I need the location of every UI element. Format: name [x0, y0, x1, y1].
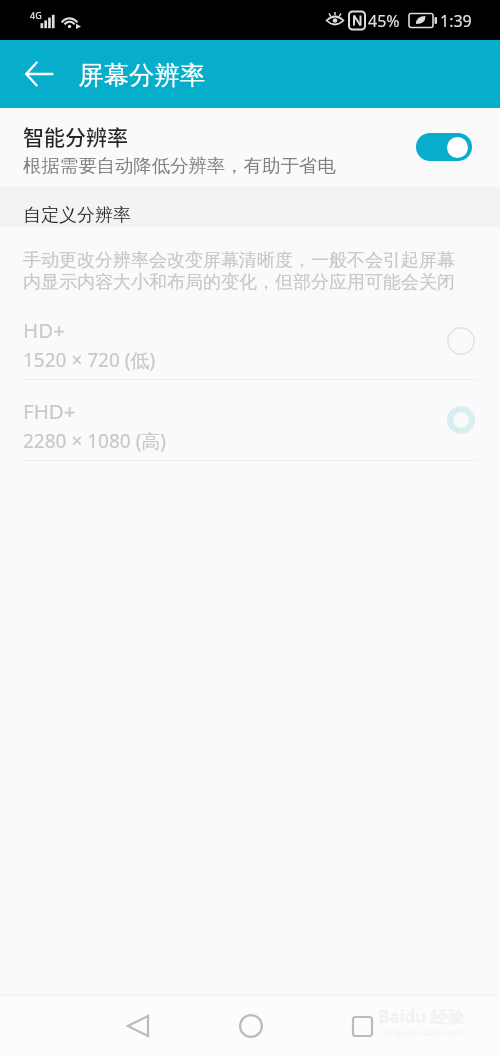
staticText: 智能分辨率	[23, 121, 128, 151]
staticText: 2280 × 1080 (高)	[23, 428, 167, 454]
staticText: 屏幕分辨率	[78, 59, 206, 91]
staticText: HD+	[23, 316, 65, 344]
button[interactable]: Home	[221, 996, 281, 1056]
staticText: 手动更改分辨率会改变屏幕清晰度，一般不会引起屏幕内显示内容大小和布局的变化，但部…	[23, 249, 463, 294]
staticText: 1520 × 720 (低)	[23, 347, 156, 373]
button[interactable]: FHD+	[0, 380, 500, 460]
button[interactable]: HD+	[0, 299, 500, 379]
staticText: 自定义分辨率	[23, 204, 131, 227]
staticText: 4G	[30, 9, 42, 21]
button[interactable]: Back	[108, 996, 168, 1056]
staticText: 根据需要自动降低分辨率，有助于省电	[23, 154, 336, 177]
staticText: 1:39	[440, 10, 472, 32]
button[interactable]: Back	[13, 48, 65, 100]
staticText: FHD+	[23, 397, 76, 425]
staticText: Baidu 经验	[378, 1005, 465, 1028]
button[interactable]: 智能分辨率	[0, 108, 500, 186]
staticText: 45%	[368, 10, 400, 32]
button[interactable]: Smart resolution toggle	[416, 133, 472, 161]
button[interactable]: Recents	[332, 996, 392, 1056]
